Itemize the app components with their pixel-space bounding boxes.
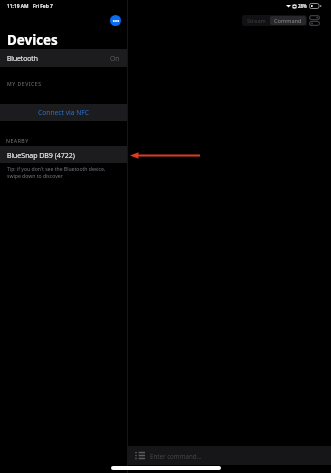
staticText: On (110, 54, 120, 63)
staticText: Tip: if you don't see the Bluetooth devi… (7, 166, 117, 180)
staticText: 11:19 AM (7, 3, 29, 10)
staticText: Stream (247, 17, 266, 25)
staticText: Connect via NFC (38, 108, 90, 117)
button[interactable]: Enter command... (128, 446, 331, 465)
staticText: Enter command... (150, 452, 202, 460)
staticText: NEARBY (6, 137, 29, 144)
button[interactable]: BlueSnap DB9 (4722) (0, 146, 127, 163)
staticText: 28% (298, 3, 307, 9)
button[interactable]: Connect via NFC (0, 104, 127, 121)
button[interactable]: Bluetooth (0, 49, 127, 67)
staticText: Bluetooth (7, 54, 38, 63)
staticText: Fri Feb 7 (33, 3, 53, 10)
staticText: BlueSnap DB9 (4722) (7, 150, 75, 160)
button[interactable]: Command (270, 16, 306, 25)
staticText: Command (274, 17, 302, 25)
button[interactable]: More options (110, 15, 121, 26)
button[interactable]: Stream (243, 16, 270, 25)
staticText: Devices (7, 31, 58, 49)
staticText: MY DEVICES (7, 80, 42, 87)
button[interactable]: Settings (308, 14, 321, 27)
